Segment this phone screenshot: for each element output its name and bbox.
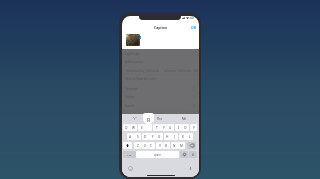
staticText: space xyxy=(154,153,162,157)
button[interactable]: space xyxy=(136,151,179,158)
button[interactable]: A xyxy=(127,133,134,140)
staticText: E xyxy=(141,126,143,130)
staticText: The xyxy=(157,117,163,121)
button[interactable]: Y xyxy=(160,124,167,131)
staticText: V xyxy=(159,144,161,148)
button[interactable]: Emoji xyxy=(180,151,188,158)
button[interactable]: B xyxy=(163,142,170,149)
staticText: W xyxy=(132,126,135,130)
button[interactable]: N xyxy=(171,142,178,149)
button[interactable]: Atherton, California xyxy=(163,68,192,74)
button[interactable]: X xyxy=(141,142,148,149)
staticText: F xyxy=(152,135,154,139)
staticText: Tumblr xyxy=(125,104,135,108)
button[interactable]: Dictation xyxy=(188,166,193,171)
staticText: C xyxy=(150,144,153,148)
button[interactable]: K xyxy=(179,133,186,140)
staticText: Me xyxy=(182,117,187,121)
button[interactable]: "r" xyxy=(122,114,147,123)
staticText: P xyxy=(193,126,195,130)
button[interactable]: E xyxy=(138,124,145,131)
button[interactable]: C xyxy=(148,142,155,149)
staticText: U xyxy=(169,126,172,130)
staticText: T xyxy=(156,126,158,130)
button[interactable]: G xyxy=(156,133,163,140)
staticText: "r" xyxy=(133,117,137,121)
button[interactable]: 123 xyxy=(123,151,136,158)
button[interactable]: Q xyxy=(123,124,130,131)
button[interactable]: M xyxy=(178,142,185,149)
staticText: Facebook xyxy=(125,87,139,91)
staticText: A xyxy=(129,135,132,139)
staticText: M xyxy=(180,144,183,148)
button[interactable]: W xyxy=(130,124,137,131)
button[interactable]: O xyxy=(182,124,189,131)
button[interactable]: D xyxy=(142,133,149,140)
button[interactable]: I xyxy=(175,124,182,131)
button[interactable]: Emoji keyboard xyxy=(128,166,133,171)
button[interactable]: L xyxy=(186,133,193,140)
staticText: 123 xyxy=(127,153,132,156)
staticText: Post to Other Accounts xyxy=(125,77,157,81)
staticText: B xyxy=(165,144,168,148)
staticText: Me xyxy=(194,69,199,73)
staticText: Tag People xyxy=(125,52,141,56)
staticText: K xyxy=(182,135,184,139)
staticText: D xyxy=(144,135,147,139)
button[interactable]: Z xyxy=(134,142,141,149)
staticText: # xyxy=(192,153,194,157)
staticText: H xyxy=(166,135,169,139)
staticText: Redwood City, California xyxy=(126,69,160,73)
staticText: N xyxy=(173,144,176,148)
staticText: Q xyxy=(125,126,128,130)
staticText: S xyxy=(137,135,139,139)
staticText: L xyxy=(189,135,191,139)
staticText: X xyxy=(144,144,146,148)
button[interactable]: Redwood City, California xyxy=(125,68,161,74)
button[interactable]: H xyxy=(164,133,171,140)
button[interactable]: The xyxy=(147,114,172,123)
staticText: Caption xyxy=(154,25,168,30)
staticText: Atherton, California xyxy=(164,69,191,73)
button[interactable]: Return xyxy=(189,151,197,158)
staticText: R xyxy=(147,116,151,123)
button[interactable]: Shift xyxy=(123,142,132,149)
staticText: J xyxy=(174,135,175,139)
staticText: Z xyxy=(137,144,139,148)
button[interactable]: J xyxy=(171,133,178,140)
button[interactable]: OK xyxy=(189,23,198,32)
button[interactable]: U xyxy=(167,124,174,131)
staticText: G xyxy=(158,135,161,139)
button[interactable]: P xyxy=(190,124,197,131)
button[interactable]: T xyxy=(153,124,160,131)
button[interactable]: F xyxy=(149,133,156,140)
button[interactable] xyxy=(145,124,152,131)
staticText: I xyxy=(178,126,180,130)
staticText: OK xyxy=(191,25,196,30)
staticText: Y xyxy=(163,126,165,130)
staticText: Twitter xyxy=(125,95,135,99)
staticText: O xyxy=(184,126,187,130)
staticText: Add Location xyxy=(125,60,144,64)
button[interactable]: S xyxy=(134,133,141,140)
button[interactable]: Backspace xyxy=(187,142,196,149)
button[interactable]: Me xyxy=(172,114,197,123)
button[interactable]: V xyxy=(156,142,163,149)
